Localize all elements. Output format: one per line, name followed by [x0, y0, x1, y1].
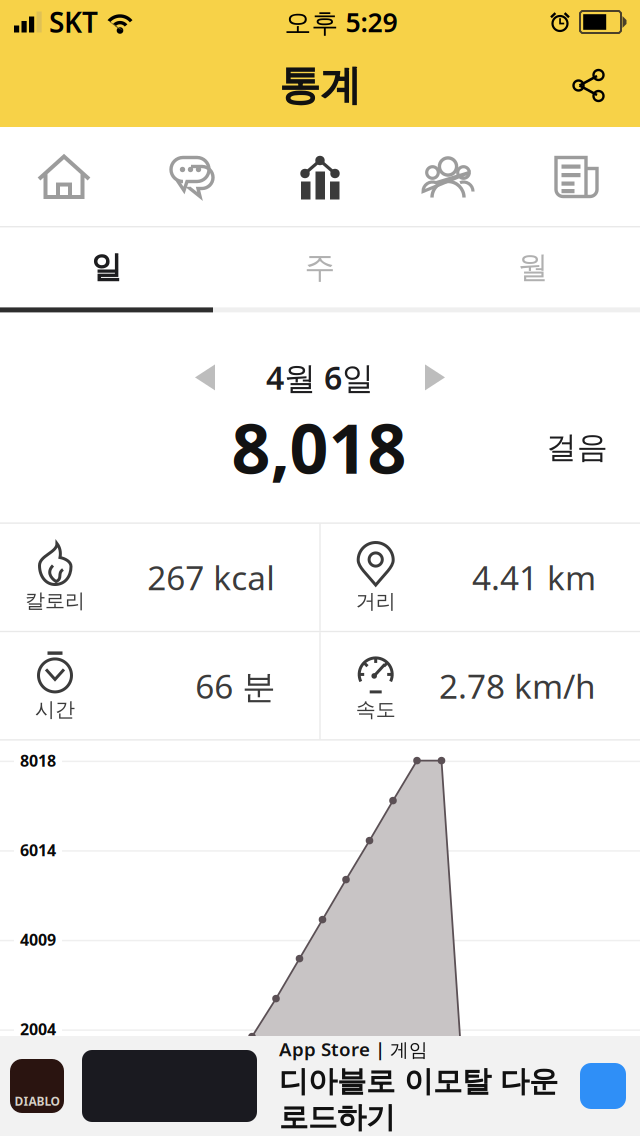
button[interactable]: 일 — [0, 227, 213, 307]
staticText: 디아블로 이모탈 다운로드하기 — [279, 1063, 558, 1135]
staticText: 속도 — [356, 697, 396, 722]
staticText: 267 kcal — [147, 555, 275, 599]
staticText: 월 — [518, 249, 549, 286]
button[interactable]: Statistics — [256, 127, 384, 226]
staticText: 4.41 km — [472, 555, 596, 599]
button[interactable]: Friends — [384, 127, 512, 226]
staticText: 칼로리 — [25, 588, 85, 613]
staticText: 2004 — [20, 1018, 56, 1040]
staticText: DIABLO — [14, 1093, 59, 1109]
staticText: 8018 — [20, 750, 56, 771]
staticText: 2.78 km/h — [439, 664, 596, 708]
staticText: App Store | 게임 — [279, 1036, 428, 1061]
button[interactable]: Previous day — [175, 352, 235, 402]
button[interactable]: 주 — [213, 227, 427, 307]
button[interactable]: News — [512, 127, 640, 226]
staticText: 통계 — [279, 60, 361, 111]
button[interactable]: DIABLO — [0, 1036, 640, 1136]
staticText: 8,018 — [231, 402, 406, 492]
button[interactable]: Next day — [405, 352, 465, 402]
button[interactable]: Home — [0, 127, 128, 226]
staticText: 오후 5:29 — [284, 4, 397, 40]
staticText: 6014 — [20, 839, 56, 861]
staticText: 66 분 — [195, 664, 275, 708]
staticText: SKT — [49, 3, 98, 41]
staticText: 4월 6일 — [266, 356, 374, 399]
button[interactable]: Messages — [128, 127, 256, 226]
staticText: 걸음 — [546, 429, 608, 466]
staticText: 시간 — [35, 697, 75, 722]
staticText: 일 — [91, 249, 122, 286]
button[interactable]: 월 — [427, 227, 640, 307]
staticText: 거리 — [356, 589, 396, 614]
staticText: 주 — [304, 249, 335, 286]
staticText: 4009 — [20, 929, 56, 950]
button[interactable]: Share — [554, 50, 624, 120]
